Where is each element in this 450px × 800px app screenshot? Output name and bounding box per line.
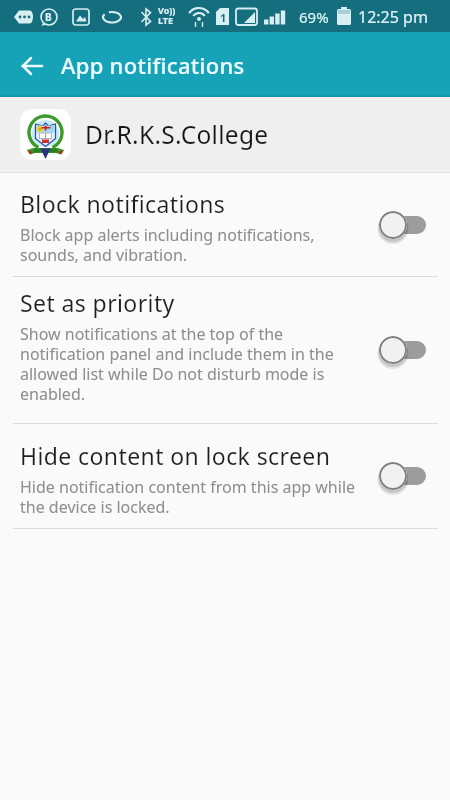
button[interactable] bbox=[379, 461, 426, 491]
staticText: Block notifications bbox=[20, 188, 226, 219]
staticText: LTE bbox=[158, 14, 174, 26]
button[interactable]: Set as priority bbox=[0, 277, 450, 423]
staticText: Hide notification content from this app … bbox=[20, 476, 356, 517]
staticText: Set as priority bbox=[20, 287, 175, 318]
staticText: Block app alerts including notifications… bbox=[20, 224, 315, 265]
button[interactable] bbox=[379, 210, 426, 240]
staticText: 1 bbox=[220, 10, 227, 25]
staticText: Hide content on lock screen bbox=[20, 440, 331, 471]
staticText: App notifications bbox=[61, 50, 245, 80]
button[interactable]: Hide content on lock screen bbox=[0, 424, 450, 528]
button[interactable] bbox=[379, 335, 426, 365]
button[interactable] bbox=[10, 44, 54, 88]
button[interactable]: Dr.R.K.S.College bbox=[0, 97, 450, 172]
staticText: B bbox=[45, 10, 52, 24]
staticText: 12:25 pm bbox=[358, 6, 428, 28]
staticText: Show notifications at the top of the not… bbox=[20, 323, 334, 404]
staticText: Dr.R.K.S.College bbox=[85, 118, 269, 151]
button[interactable]: Block notifications bbox=[0, 173, 450, 276]
staticText: 69% bbox=[299, 7, 329, 27]
staticText: Vo)) bbox=[158, 4, 176, 16]
